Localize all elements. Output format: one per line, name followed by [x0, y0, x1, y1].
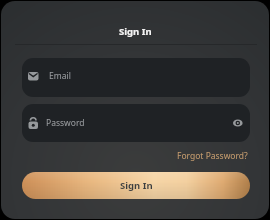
- staticText: Forgot Password?: [177, 150, 248, 162]
- button[interactable]: Password: [22, 104, 250, 142]
- staticText: Sign In: [120, 179, 153, 192]
- staticText: Email: [49, 70, 71, 82]
- button[interactable]: Email: [22, 58, 250, 97]
- button[interactable]: Forgot Password?: [177, 150, 248, 162]
- staticText: Password: [46, 117, 85, 129]
- button[interactable]: [230, 115, 246, 131]
- staticText: Sign In: [119, 25, 152, 38]
- button[interactable]: Sign In: [22, 172, 250, 199]
